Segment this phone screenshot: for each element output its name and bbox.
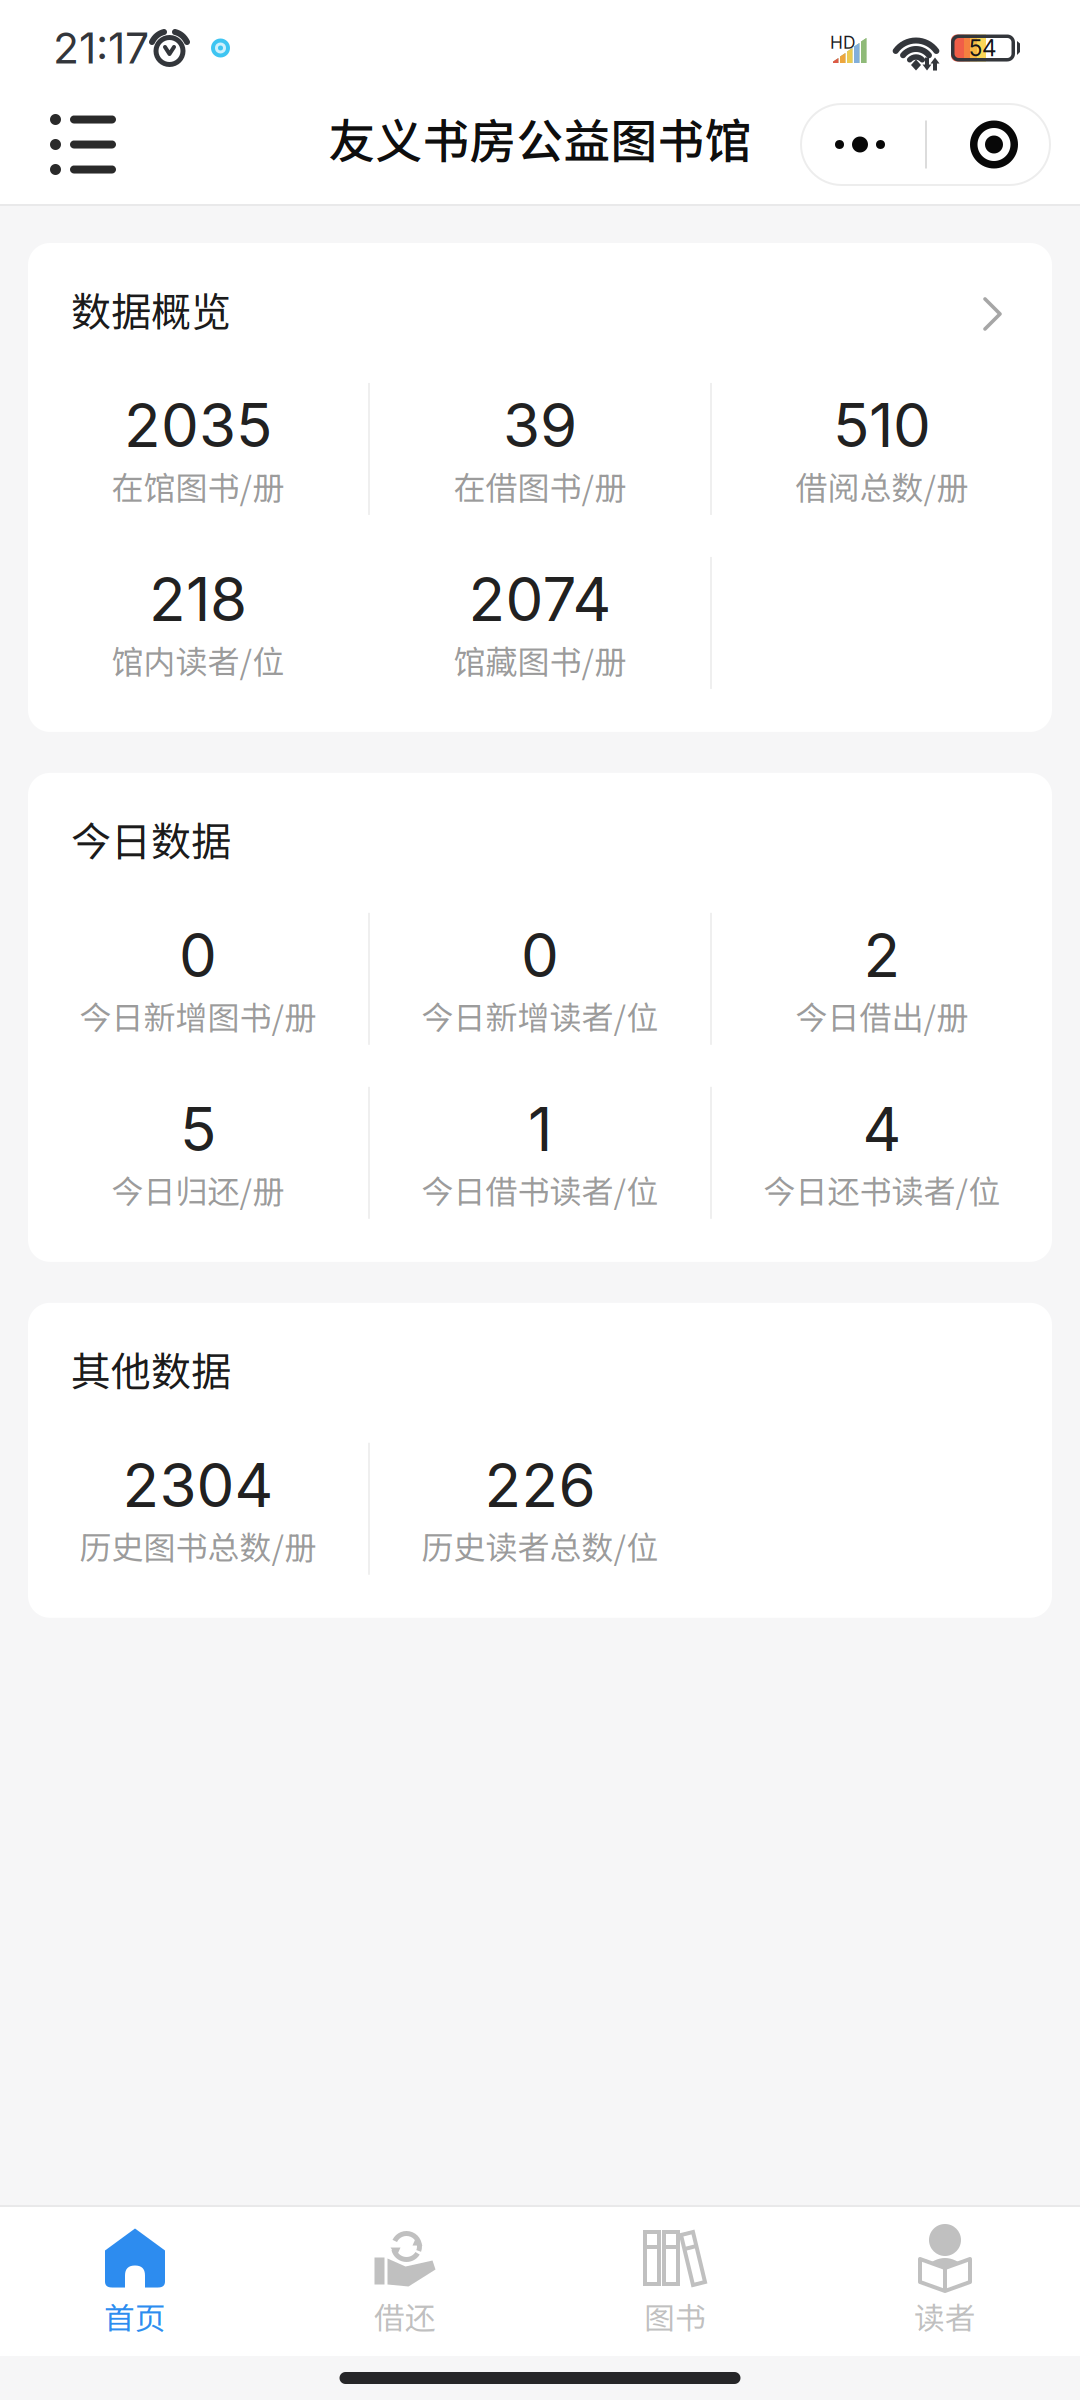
staticText: 馆内读者/位	[111, 637, 284, 683]
staticText: 在馆图书/册	[111, 463, 284, 509]
staticText: 友义书房公益图书馆	[328, 104, 751, 172]
staticText: 历史读者总数/位	[421, 1522, 658, 1569]
staticText: 0	[521, 919, 559, 991]
staticText: 首页	[104, 2294, 166, 2338]
staticText: 图书	[644, 2294, 706, 2338]
staticText: 今日借书读者/位	[421, 1166, 658, 1213]
button[interactable]: Close mini program	[927, 103, 1051, 186]
staticText: 510	[833, 389, 931, 462]
staticText: 借阅总数/册	[795, 463, 968, 509]
staticText: 数据概览	[71, 280, 231, 338]
staticText: 今日借出/册	[795, 992, 968, 1039]
staticText: 2074	[468, 563, 611, 636]
staticText: 39	[503, 389, 577, 462]
staticText: 2	[863, 919, 900, 991]
staticText: 今日新增图书/册	[79, 992, 316, 1039]
staticText: 其他数据	[71, 1340, 231, 1398]
staticText: 226	[484, 1449, 595, 1521]
staticText: HD	[830, 32, 856, 53]
button[interactable]: Menu	[0, 103, 140, 186]
staticText: 读者	[914, 2294, 976, 2338]
staticText: 2304	[122, 1449, 273, 1521]
button[interactable]: 图书	[540, 2206, 810, 2357]
staticText: 今日归还/册	[111, 1166, 284, 1213]
staticText: 1	[528, 1093, 552, 1165]
staticText: 在借图书/册	[453, 463, 626, 509]
staticText: 21:17	[53, 22, 149, 74]
staticText: 4	[862, 1093, 901, 1165]
button[interactable]: 数据概览	[28, 243, 1052, 732]
staticText: 2035	[124, 389, 272, 462]
staticText: 借还	[374, 2294, 436, 2338]
staticText: 馆藏图书/册	[453, 637, 626, 683]
staticText: 54	[969, 34, 997, 62]
staticText: 今日数据	[71, 810, 231, 868]
staticText: 0	[179, 919, 217, 991]
staticText: 今日还书读者/位	[763, 1166, 1000, 1213]
button[interactable]: 读者	[810, 2206, 1080, 2357]
button[interactable]: More options	[800, 103, 925, 186]
staticText: 历史图书总数/册	[79, 1522, 316, 1569]
staticText: 218	[149, 563, 247, 636]
staticText: 5	[180, 1093, 216, 1165]
staticText: 今日新增读者/位	[421, 992, 658, 1039]
button[interactable]: 首页	[0, 2206, 270, 2357]
button[interactable]: 借还	[270, 2206, 540, 2357]
